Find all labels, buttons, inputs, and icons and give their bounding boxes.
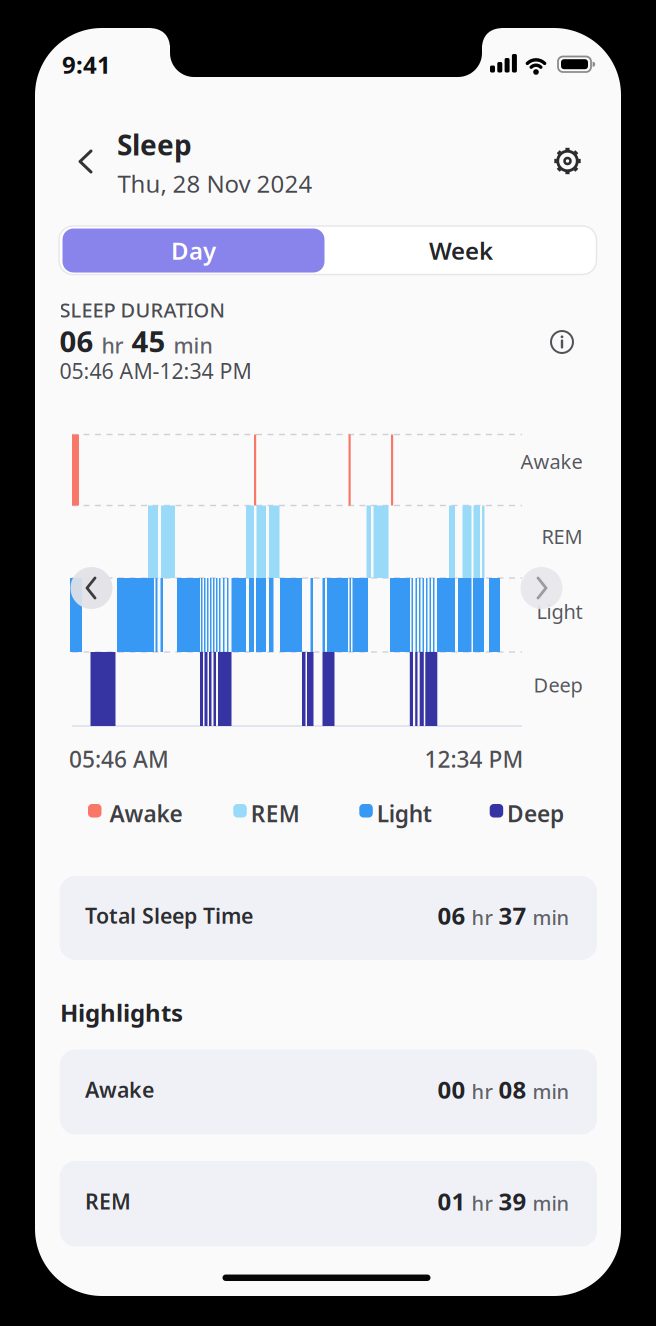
staticText: 9:41 xyxy=(62,48,111,80)
staticText: 05:46 AM-12:34 PM xyxy=(59,356,251,385)
staticText: Sleep xyxy=(117,126,192,163)
staticText: SLEEP DURATION xyxy=(59,296,225,323)
staticText: 01 xyxy=(437,1185,465,1217)
staticText: hr xyxy=(101,331,123,359)
button[interactable]: REM xyxy=(59,1161,597,1246)
button[interactable]: Previous day xyxy=(70,567,112,609)
button[interactable]: Settings xyxy=(553,147,581,175)
staticText: 12:34 PM xyxy=(424,744,523,774)
staticText: hr xyxy=(471,1078,492,1104)
button[interactable]: Total Sleep Time xyxy=(59,876,597,960)
staticText: REM xyxy=(85,1187,131,1215)
staticText: hr xyxy=(471,904,492,930)
staticText: 39 xyxy=(498,1185,526,1217)
button[interactable]: Next day xyxy=(520,567,562,609)
staticText: Awake xyxy=(520,448,582,475)
staticText: Thu, 28 Nov 2024 xyxy=(117,167,312,199)
staticText: min xyxy=(532,1190,569,1216)
button[interactable]: Awake xyxy=(59,1049,597,1134)
staticText: hr xyxy=(471,1190,492,1216)
staticText: min xyxy=(532,1078,569,1104)
button[interactable]: Day xyxy=(62,228,324,272)
button[interactable]: Week xyxy=(336,228,586,272)
staticText: 06 xyxy=(437,900,465,931)
staticText: 00 xyxy=(437,1074,465,1105)
staticText: REM xyxy=(251,798,300,829)
staticText: Total Sleep Time xyxy=(85,901,253,930)
staticText: 05:46 AM xyxy=(69,744,169,774)
staticText: 06 xyxy=(59,321,93,360)
staticText: Week xyxy=(429,235,493,266)
button[interactable]: Sleep duration info xyxy=(550,330,574,354)
staticText: Deep xyxy=(507,798,564,829)
staticText: 37 xyxy=(498,900,526,931)
staticText: Awake xyxy=(85,1075,154,1104)
staticText: 08 xyxy=(498,1074,526,1105)
staticText: Light xyxy=(377,798,432,829)
staticText: Highlights xyxy=(60,996,183,1028)
staticText: min xyxy=(173,331,212,359)
staticText: Awake xyxy=(109,798,182,829)
staticText: REM xyxy=(541,523,582,550)
staticText: min xyxy=(532,904,569,930)
staticText: 45 xyxy=(131,321,165,360)
button[interactable]: Back xyxy=(76,148,95,175)
staticText: Light xyxy=(536,598,582,625)
staticText: Day xyxy=(171,235,216,266)
staticText: Deep xyxy=(533,671,582,698)
